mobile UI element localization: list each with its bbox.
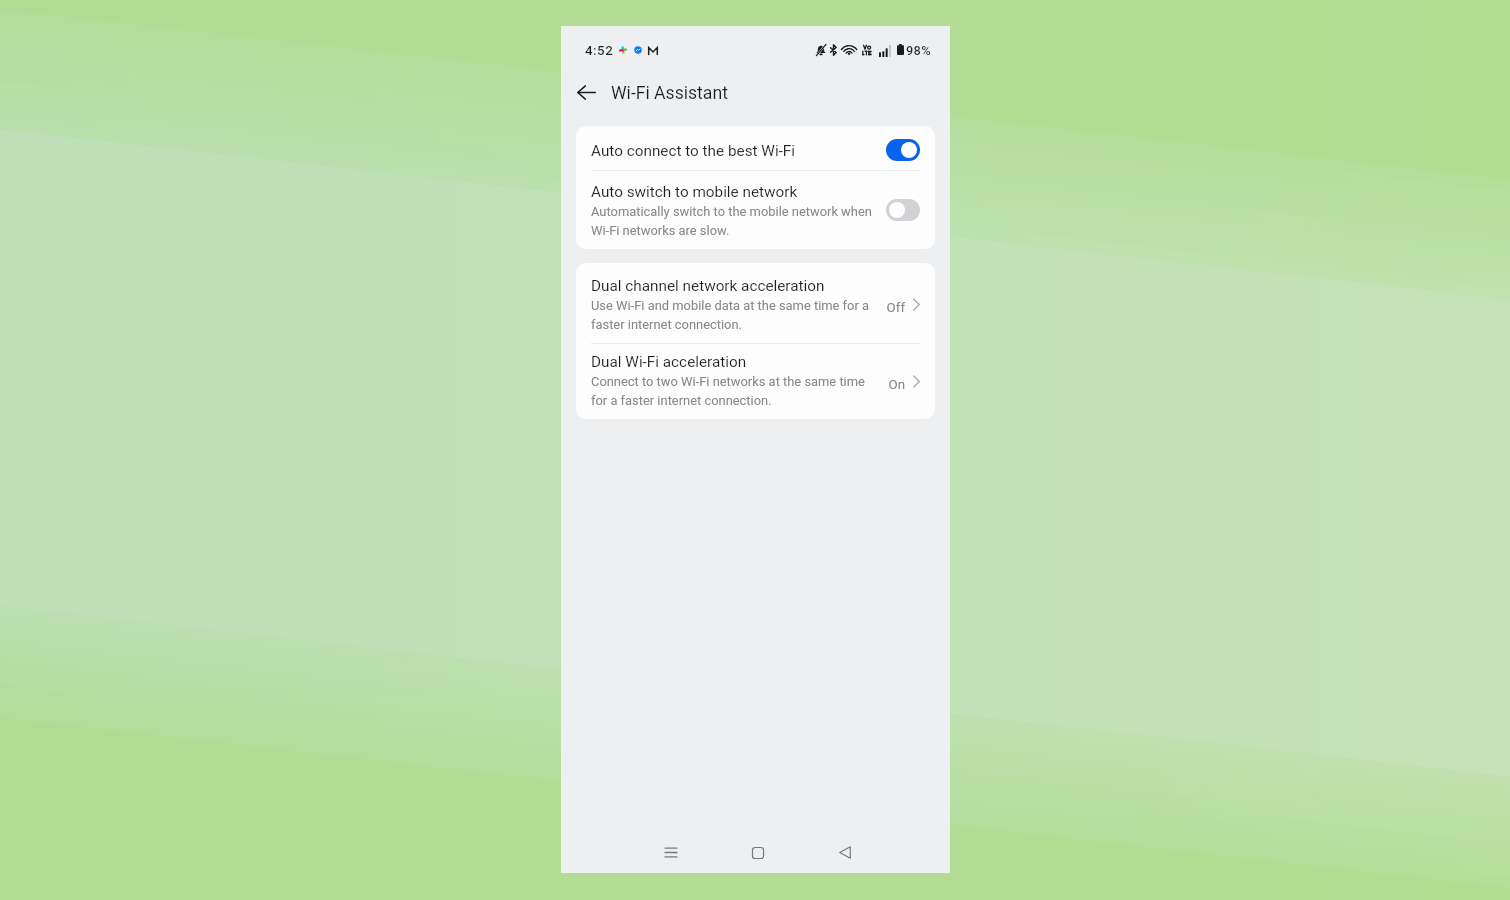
- staticText: Dual Wi-Fi acceleration: [591, 353, 747, 371]
- staticText: Use Wi-Fi and mobile data at the same ti…: [591, 298, 876, 332]
- staticText: Automatically switch to the mobile netwo…: [591, 204, 876, 238]
- button[interactable]: Back: [822, 830, 867, 875]
- button[interactable]: Recent apps: [648, 830, 693, 875]
- button[interactable]: Auto switch to mobile network: [576, 171, 935, 249]
- button[interactable]: Back: [568, 74, 604, 110]
- button[interactable]: Auto connect to the best Wi-Fi: [576, 126, 935, 170]
- staticText: Wi-Fi Assistant: [611, 83, 728, 104]
- staticText: Auto connect to the best Wi-Fi: [591, 142, 796, 160]
- staticText: Connect to two Wi-Fi networks at the sam…: [591, 374, 876, 408]
- staticText: Off: [865, 300, 905, 316]
- staticText: On: [865, 377, 905, 393]
- staticText: 4:52: [585, 43, 614, 59]
- button[interactable]: Home: [735, 830, 780, 875]
- button[interactable]: Disabled: [886, 199, 920, 221]
- button[interactable]: Dual channel network acceleration: [576, 263, 935, 343]
- staticText: Auto switch to mobile network: [591, 183, 798, 201]
- button[interactable]: Enabled: [886, 139, 920, 161]
- staticText: Dual channel network acceleration: [591, 277, 825, 295]
- staticText: 98%: [906, 43, 931, 58]
- button[interactable]: Dual Wi-Fi acceleration: [576, 344, 935, 419]
